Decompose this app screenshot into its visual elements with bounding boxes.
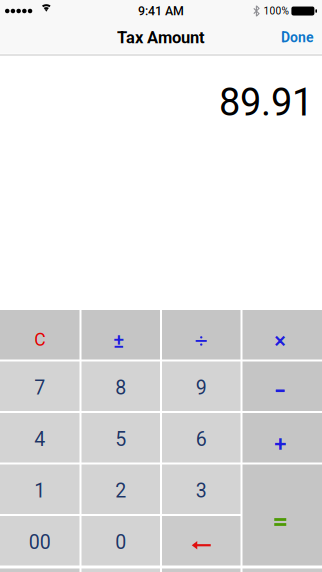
staticText: Done [281,29,314,46]
staticText: 89.91 [219,80,313,125]
button[interactable]: 5 [81,413,160,462]
staticText: × [274,328,286,354]
staticText: 2 [115,479,126,502]
staticText: 1 [34,479,45,502]
button[interactable]: 3 [162,464,240,514]
button[interactable]: + [242,413,322,462]
staticText: 6 [196,428,207,451]
button[interactable]: Subtract [242,361,322,411]
button[interactable]: × [242,310,322,359]
button[interactable]: 8 [81,361,160,411]
staticText: 9:41 AM [138,4,184,18]
staticText: 5 [115,428,126,451]
staticText: ± [113,329,124,353]
button[interactable]: Delete [162,516,240,565]
button[interactable]: C [0,310,79,359]
staticText: C [34,329,45,350]
button[interactable]: 2 [81,464,160,514]
staticText: 8 [115,376,126,399]
staticText: 00 [29,531,51,554]
button[interactable]: 1 [0,464,79,514]
button[interactable]: Equals [242,464,322,565]
staticText: 3 [196,479,207,502]
button[interactable]: Done [281,29,322,46]
button[interactable]: 00 [0,516,79,565]
button[interactable]: 7 [0,361,79,411]
button[interactable]: Divide [162,310,240,359]
staticText: 100% [263,5,288,17]
button[interactable]: ± [81,310,160,359]
staticText: 7 [34,376,45,399]
staticText: + [274,431,286,457]
button[interactable]: 0 [81,516,160,565]
button[interactable]: 9 [162,361,240,411]
staticText: 4 [34,428,45,451]
staticText: 9 [196,376,207,399]
button[interactable]: 4 [0,413,79,462]
staticText: Tax Amount [117,28,205,47]
staticText: 0 [115,531,126,554]
button[interactable]: 6 [162,413,240,462]
